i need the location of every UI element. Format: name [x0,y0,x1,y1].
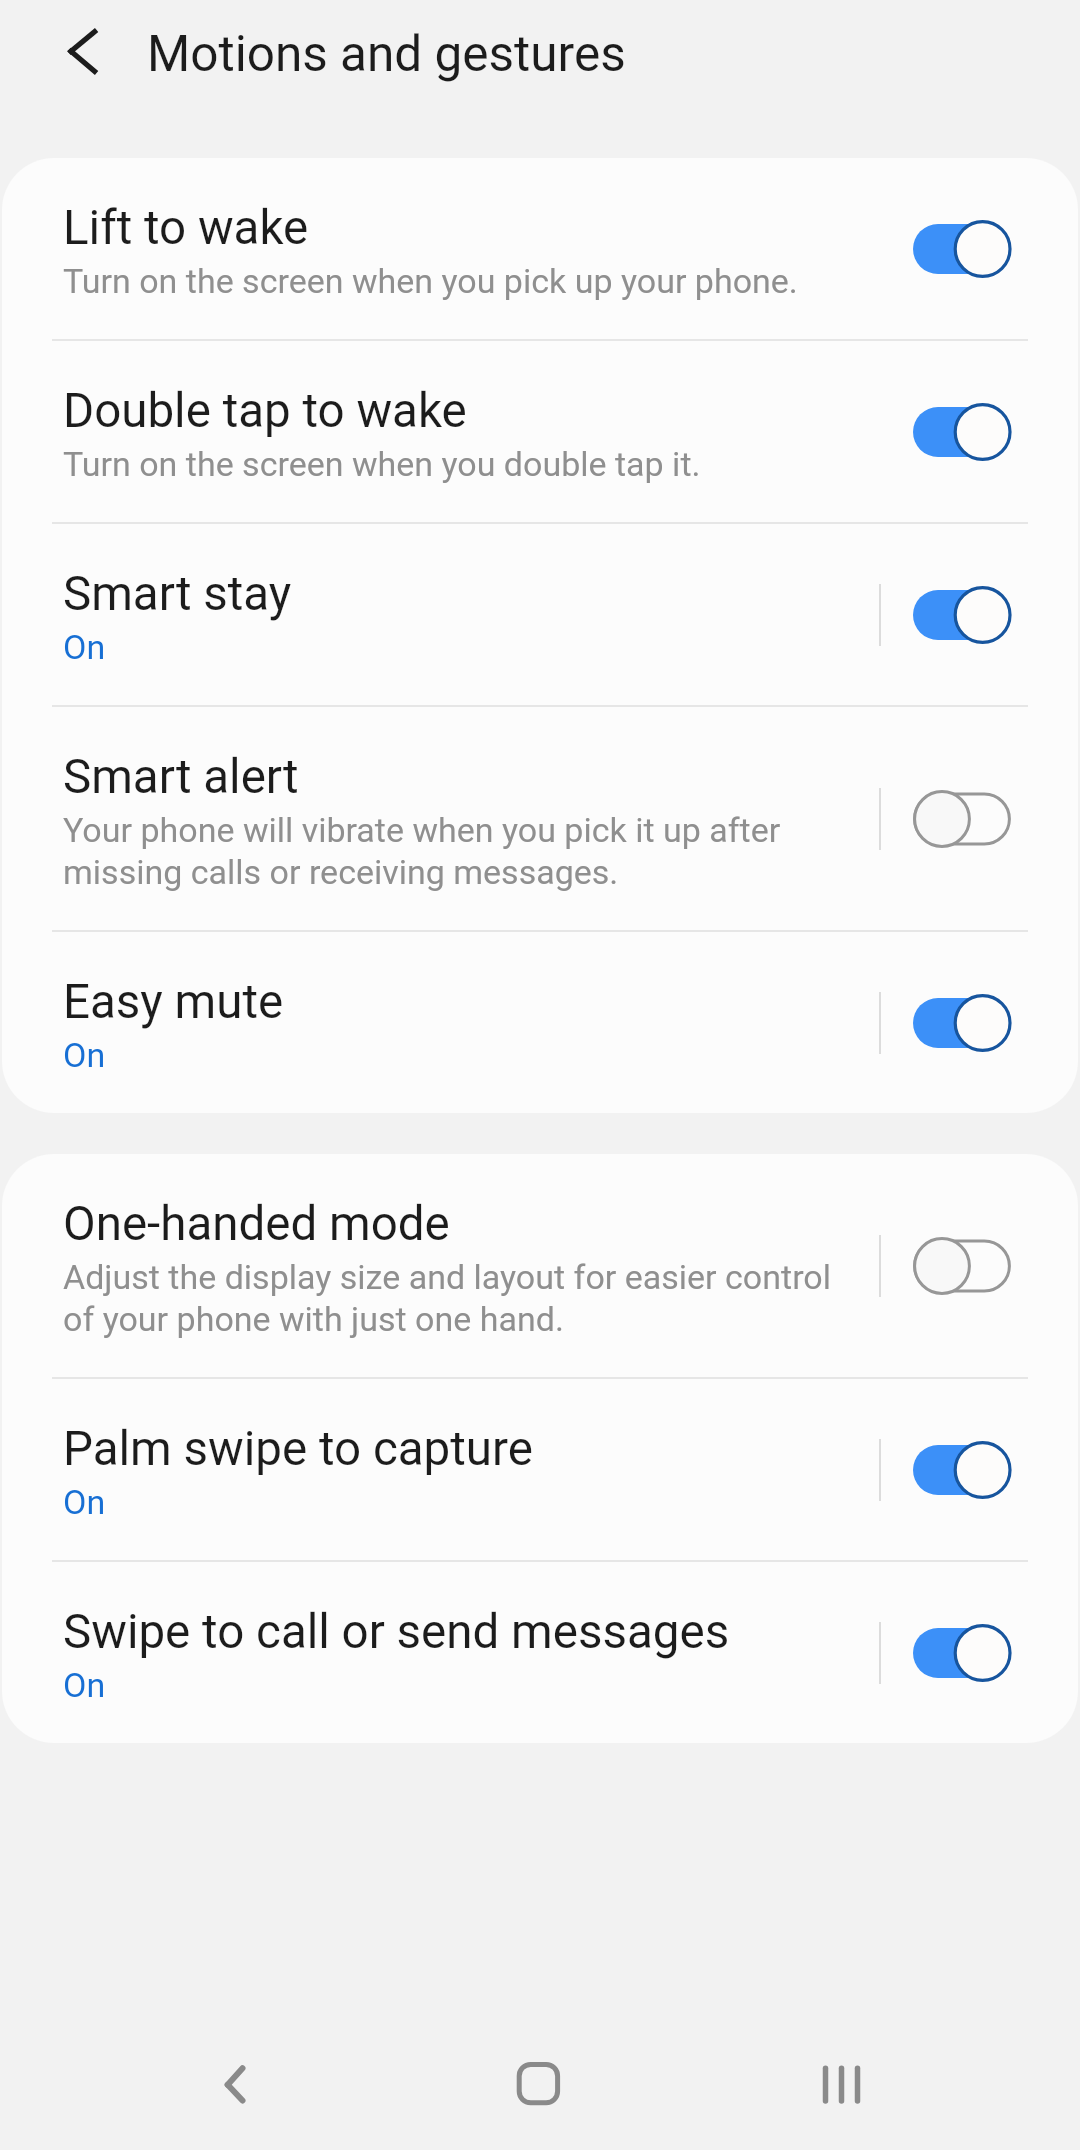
button[interactable]: Smart alert [2,707,1078,930]
button[interactable]: Switch on [913,994,1011,1052]
button[interactable]: Smart stay [2,524,1078,705]
button[interactable]: Switch on [913,220,1011,278]
staticText: On [63,1481,106,1523]
staticText: On [63,626,106,668]
staticText: Motions and gestures [147,25,626,83]
button[interactable]: Switch off [913,1237,1011,1295]
staticText: On [63,1664,106,1706]
staticText: One-handed mode [63,1196,450,1252]
button[interactable]: Switch on [913,1441,1011,1499]
button[interactable]: Lift to wake [2,158,1078,339]
staticText: Lift to wake [63,200,309,256]
button[interactable]: Double tap to wake [2,341,1078,522]
button[interactable]: Switch on [913,403,1011,461]
staticText: Your phone will vibrate when you pick it… [63,809,860,893]
button[interactable]: Easy mute [2,932,1078,1113]
button[interactable]: Back [165,2019,305,2149]
button[interactable]: Switch off [913,790,1011,848]
button[interactable]: Switch on [913,586,1011,644]
staticText: Turn on the screen when you double tap i… [63,443,701,485]
staticText: Easy mute [63,974,284,1030]
staticText: Smart stay [63,566,292,622]
staticText: Palm swipe to capture [63,1421,533,1477]
staticText: Swipe to call or send messages [63,1604,730,1660]
staticText: Adjust the display size and layout for e… [63,1256,860,1340]
staticText: Double tap to wake [63,383,467,439]
button[interactable]: Recent apps [772,2019,912,2149]
button[interactable]: Home [470,2019,610,2149]
staticText: Turn on the screen when you pick up your… [63,260,798,302]
button[interactable]: One-handed mode [2,1154,1078,1377]
button[interactable]: Palm swipe to capture [2,1379,1078,1560]
button[interactable]: Navigate up [47,17,119,89]
button[interactable]: Switch on [913,1624,1011,1682]
staticText: On [63,1034,106,1076]
staticText: Smart alert [63,749,299,805]
button[interactable]: Swipe to call or send messages [2,1562,1078,1743]
